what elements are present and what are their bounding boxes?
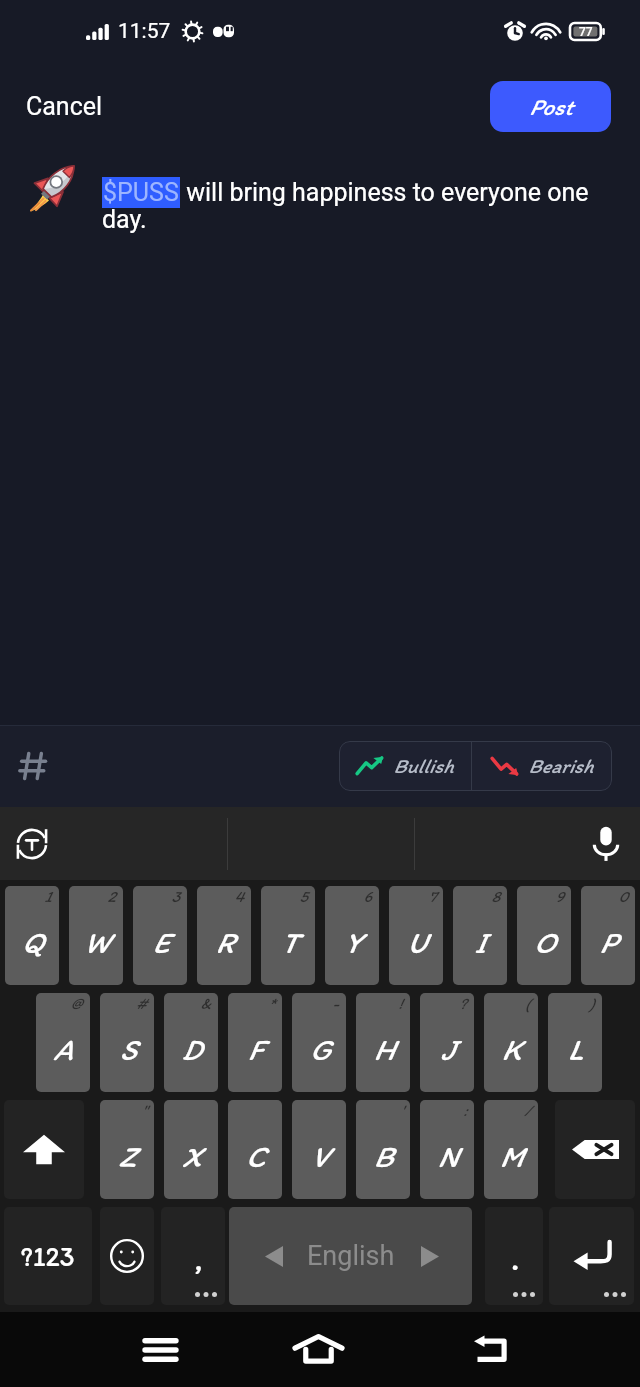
button[interactable]: 5 xyxy=(261,886,315,985)
button[interactable]: ?123 xyxy=(4,1207,92,1305)
staticText: J xyxy=(440,1031,455,1067)
button[interactable]: Shift xyxy=(4,1100,84,1199)
button[interactable]: Voice input xyxy=(580,818,632,870)
staticText: T xyxy=(280,924,297,960)
button[interactable]: Backspace xyxy=(555,1100,635,1199)
staticText: 2 xyxy=(107,887,116,906)
button[interactable]: C xyxy=(228,1100,282,1199)
button[interactable]: 6 xyxy=(325,886,379,985)
staticText: V xyxy=(310,1138,328,1174)
button[interactable]: - xyxy=(292,993,346,1092)
button[interactable]: X xyxy=(164,1100,218,1199)
staticText: S xyxy=(119,1031,136,1067)
button[interactable]: . xyxy=(485,1207,543,1305)
button[interactable]: @ xyxy=(36,993,90,1092)
staticText: F xyxy=(247,1031,263,1067)
button[interactable]: Recents xyxy=(110,1312,210,1387)
button[interactable]: ( xyxy=(484,993,538,1092)
staticText: M xyxy=(499,1138,523,1174)
button[interactable]: & xyxy=(164,993,218,1092)
button[interactable]: Cancel xyxy=(0,76,123,136)
staticText: B xyxy=(373,1138,393,1174)
staticText: 4 xyxy=(234,887,244,906)
button[interactable]: 8 xyxy=(453,886,507,985)
button[interactable]: # xyxy=(100,993,154,1092)
staticText: R xyxy=(215,924,234,960)
button[interactable]: V xyxy=(292,1100,346,1199)
button[interactable]: Back xyxy=(441,1312,541,1387)
staticText: 5 xyxy=(299,887,308,906)
button[interactable]: 2 xyxy=(69,886,123,985)
staticText: Cancel xyxy=(26,92,103,121)
button[interactable]: : xyxy=(420,1100,474,1199)
staticText: P xyxy=(599,924,617,960)
button[interactable]: Post xyxy=(490,81,611,132)
staticText: Bullish xyxy=(393,754,454,778)
staticText: H xyxy=(373,1031,394,1067)
staticText: L xyxy=(567,1031,583,1067)
button[interactable]: English xyxy=(229,1207,472,1305)
button[interactable]: Enter xyxy=(549,1207,634,1305)
staticText: U xyxy=(406,924,426,960)
button[interactable]: , xyxy=(161,1207,225,1305)
staticText: Z xyxy=(118,1138,136,1174)
button[interactable]: Home xyxy=(268,1312,368,1387)
staticText: C xyxy=(245,1138,265,1174)
staticText: English xyxy=(307,1240,395,1272)
staticText: K xyxy=(501,1031,521,1067)
staticText: X xyxy=(181,1138,201,1174)
staticText: 3 xyxy=(171,887,180,906)
button[interactable]: * xyxy=(228,993,282,1092)
button[interactable]: 0 xyxy=(581,886,635,985)
staticText: / xyxy=(524,1101,531,1120)
staticText: ) xyxy=(589,994,595,1013)
staticText: # xyxy=(136,994,147,1013)
button[interactable]: ' xyxy=(356,1100,410,1199)
staticText: 77 xyxy=(579,25,593,39)
button[interactable]: " xyxy=(100,1100,154,1199)
staticText: 0 xyxy=(618,887,628,906)
staticText: 9 xyxy=(555,887,564,906)
button[interactable]: 9 xyxy=(517,886,571,985)
staticText: Bearish xyxy=(528,754,593,778)
button[interactable]: Bearish xyxy=(472,741,612,791)
button[interactable]: 4 xyxy=(197,886,251,985)
staticText: G xyxy=(309,1031,330,1067)
button[interactable]: Emoji xyxy=(100,1207,154,1305)
staticText: day. xyxy=(102,205,147,234)
button[interactable]: ? xyxy=(420,993,474,1092)
button[interactable]: Translate xyxy=(8,820,56,868)
staticText: ( xyxy=(525,994,531,1013)
button[interactable]: 1 xyxy=(5,886,59,985)
button[interactable]: Bullish xyxy=(339,741,471,791)
staticText: N xyxy=(437,1138,458,1174)
button[interactable]: ! xyxy=(356,993,410,1092)
staticText: @ xyxy=(70,994,83,1013)
staticText: D xyxy=(181,1031,201,1067)
staticText: : xyxy=(463,1101,467,1120)
button[interactable]: ) xyxy=(548,993,602,1092)
staticText: Y xyxy=(343,924,361,960)
button[interactable]: 3 xyxy=(133,886,187,985)
button[interactable]: / xyxy=(484,1100,538,1199)
staticText: W xyxy=(83,924,109,960)
staticText: A xyxy=(53,1031,73,1067)
staticText: 6 xyxy=(363,887,372,906)
staticText: O xyxy=(533,924,555,960)
staticText: 8 xyxy=(491,887,500,906)
button[interactable]: Hashtag xyxy=(10,743,56,789)
button[interactable]: 7 xyxy=(389,886,443,985)
staticText: 11:57 xyxy=(118,19,171,44)
staticText: ?123 xyxy=(21,1240,75,1272)
staticText: , xyxy=(195,1238,204,1279)
staticText: I xyxy=(474,924,486,960)
staticText: Post xyxy=(529,93,573,121)
staticText: 1 xyxy=(44,887,52,906)
staticText: " xyxy=(141,1101,147,1120)
staticText: E xyxy=(152,924,169,960)
staticText: Q xyxy=(21,924,43,960)
staticText: - xyxy=(332,994,339,1013)
staticText: ? xyxy=(459,994,467,1013)
staticText: $PUSS xyxy=(103,178,179,207)
